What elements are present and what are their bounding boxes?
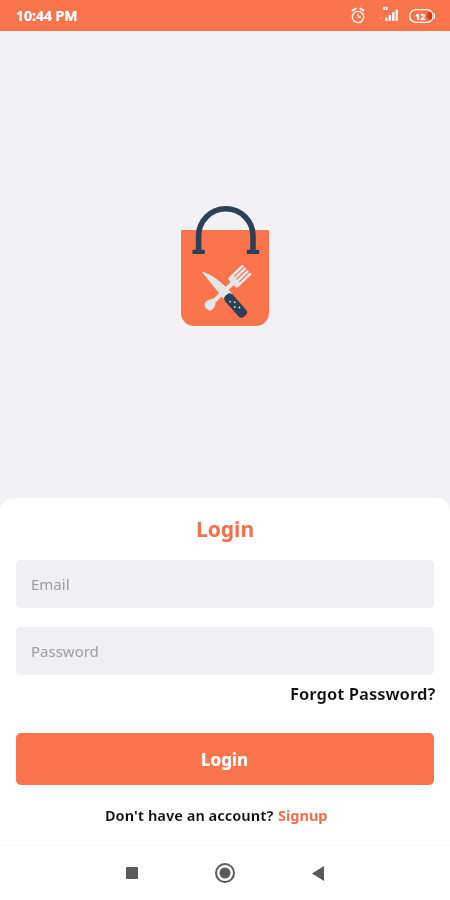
button[interactable]: Forgot Password? (290, 682, 436, 704)
button[interactable]: Login (16, 733, 434, 785)
staticText: Don't have an account? (105, 805, 274, 825)
staticText: 12 (415, 10, 426, 22)
button[interactable]: Password (16, 627, 434, 675)
staticText: Signup (278, 805, 328, 825)
staticText: 10:44 PM (16, 6, 78, 25)
staticText: Password (31, 641, 99, 661)
button[interactable]: Recent apps (112, 853, 152, 893)
button[interactable]: Back (298, 853, 338, 893)
staticText: Login (201, 748, 249, 771)
staticText: Email (31, 574, 70, 594)
button[interactable]: Email (16, 560, 434, 608)
staticText: Login (0, 515, 450, 544)
button[interactable]: Don't have an account? (0, 805, 450, 825)
button[interactable]: Home (205, 853, 245, 893)
